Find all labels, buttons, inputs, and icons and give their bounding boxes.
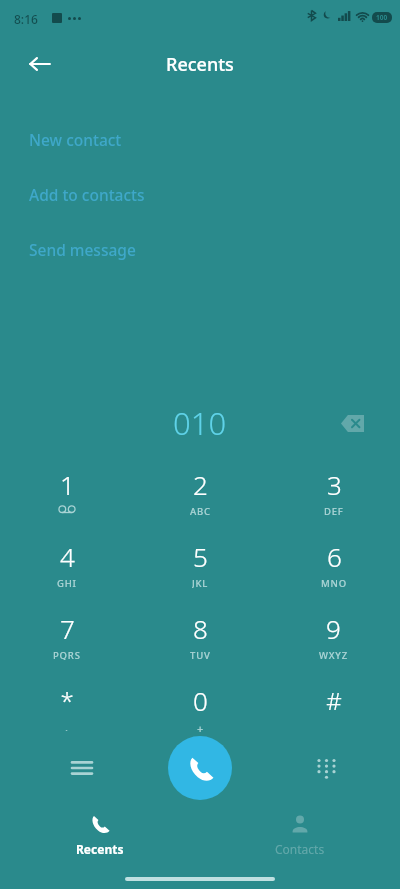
- staticText: TUV: [190, 649, 211, 660]
- staticText: 100: [376, 13, 388, 22]
- button[interactable]: 6: [267, 527, 400, 599]
- staticText: 8:16: [14, 11, 38, 27]
- button[interactable]: 0: [134, 671, 267, 743]
- staticText: 1: [60, 467, 75, 502]
- button[interactable]: 1: [0, 455, 134, 527]
- staticText: ABC: [190, 505, 211, 516]
- staticText: Recents: [166, 52, 234, 77]
- button[interactable]: New contact: [0, 112, 400, 167]
- staticText: ,: [65, 720, 69, 731]
- staticText: +: [197, 721, 205, 732]
- staticText: Add to contacts: [29, 184, 145, 205]
- staticText: 8: [193, 611, 208, 646]
- staticText: PQRS: [53, 649, 81, 660]
- button[interactable]: Backspace: [330, 401, 374, 445]
- button[interactable]: 8: [134, 599, 267, 671]
- button[interactable]: #: [267, 671, 400, 743]
- button[interactable]: Recents: [60, 806, 140, 872]
- button[interactable]: 3: [267, 455, 400, 527]
- button[interactable]: 5: [134, 527, 267, 599]
- staticText: WXYZ: [319, 649, 348, 660]
- staticText: 3: [327, 467, 342, 502]
- staticText: DEF: [324, 505, 344, 516]
- button[interactable]: 7: [0, 599, 134, 671]
- button[interactable]: Menu: [58, 744, 106, 792]
- staticText: MNO: [321, 577, 347, 588]
- staticText: 010: [173, 402, 227, 444]
- staticText: GHI: [57, 577, 77, 588]
- staticText: 7: [60, 611, 75, 646]
- button[interactable]: Add to contacts: [0, 167, 400, 222]
- button[interactable]: *: [0, 671, 134, 743]
- staticText: 2: [193, 467, 208, 502]
- staticText: 0: [193, 683, 208, 718]
- button[interactable]: Contacts: [260, 806, 340, 872]
- button[interactable]: 2: [134, 455, 267, 527]
- staticText: Send message: [29, 239, 136, 260]
- staticText: 9: [326, 611, 341, 646]
- staticText: 4: [60, 539, 75, 574]
- button[interactable]: Send message: [0, 222, 400, 277]
- button[interactable]: 9: [267, 599, 400, 671]
- staticText: 6: [327, 539, 342, 574]
- staticText: *: [60, 684, 74, 717]
- staticText: 5: [193, 539, 208, 574]
- staticText: Contacts: [275, 841, 325, 857]
- button[interactable]: 4: [0, 527, 134, 599]
- button[interactable]: Back: [16, 40, 64, 88]
- button[interactable]: Dialpad: [302, 744, 350, 792]
- staticText: Recents: [76, 841, 124, 857]
- staticText: New contact: [29, 129, 122, 150]
- button[interactable]: Call: [168, 736, 232, 800]
- staticText: JKL: [192, 577, 209, 588]
- staticText: #: [326, 684, 342, 717]
